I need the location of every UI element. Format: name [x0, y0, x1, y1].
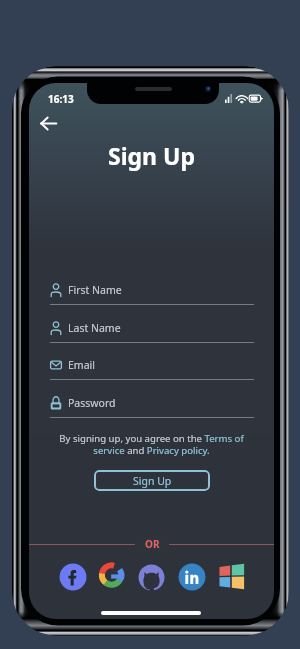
- button[interactable]: First Name: [50, 278, 254, 305]
- button[interactable]: LinkedIn: [178, 563, 206, 591]
- staticText: OR: [145, 537, 160, 551]
- staticText: Password: [68, 396, 116, 410]
- staticText: Email: [68, 358, 95, 372]
- button[interactable]: Microsoft: [217, 562, 246, 591]
- staticText: First Name: [68, 283, 122, 297]
- button[interactable]: Sign Up: [94, 470, 210, 491]
- staticText: 16:13: [48, 92, 74, 106]
- staticText: Last Name: [68, 321, 121, 335]
- staticText: By signing up, you agree on the Terms of…: [49, 432, 254, 457]
- staticText: Sign Up: [133, 474, 172, 488]
- button[interactable]: Facebook: [59, 563, 87, 591]
- button[interactable]: Back: [34, 109, 62, 137]
- button[interactable]: Password: [50, 391, 254, 418]
- staticText: Sign Up: [29, 140, 274, 171]
- button[interactable]: GitHub: [138, 564, 165, 591]
- button[interactable]: Last Name: [50, 316, 254, 343]
- button[interactable]: Email: [50, 353, 254, 380]
- button[interactable]: Google: [98, 561, 126, 589]
